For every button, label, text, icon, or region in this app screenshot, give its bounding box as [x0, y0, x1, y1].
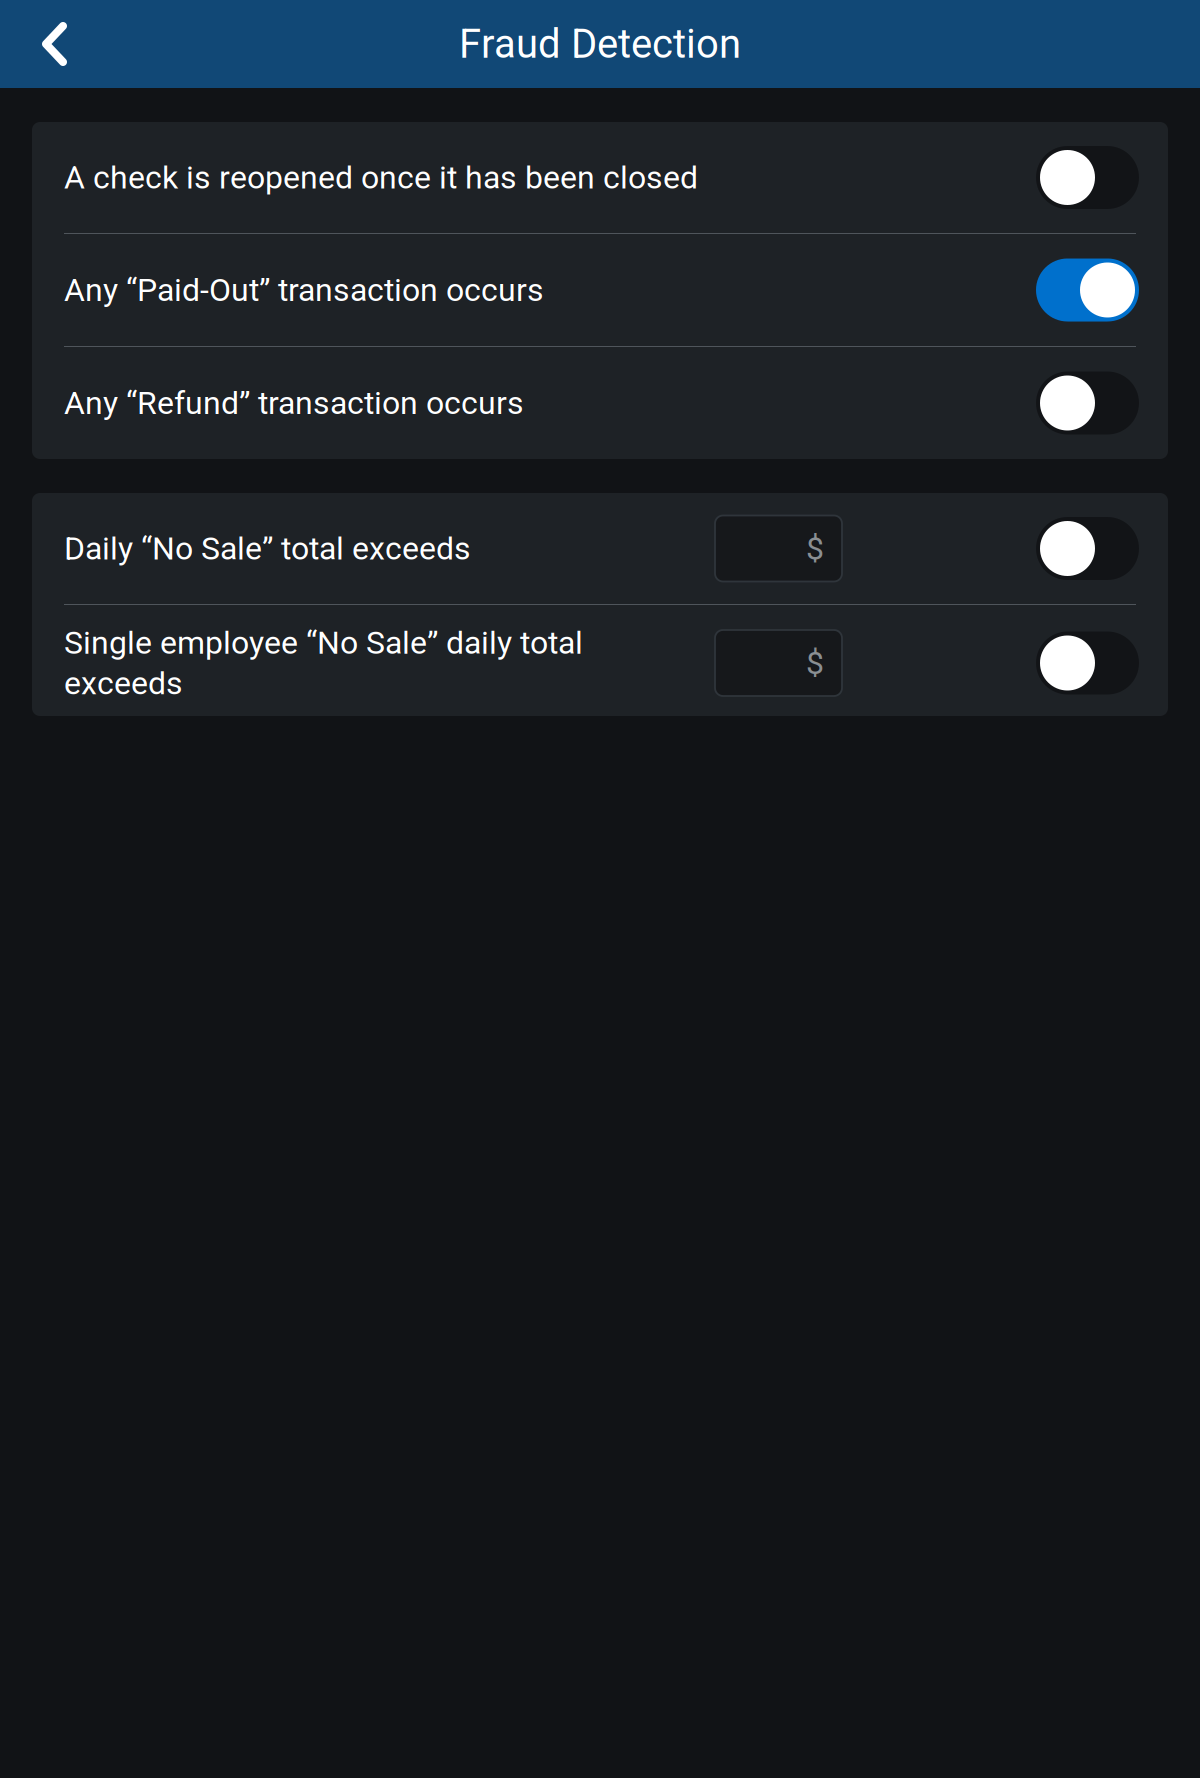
button[interactable]: Any “Refund” transaction occurs — [32, 347, 1168, 459]
button[interactable]: Dollar amount — [715, 630, 842, 696]
staticText: Daily “No Sale” total exceeds — [64, 530, 471, 567]
button[interactable]: Single employee “No Sale” daily total ex… — [32, 605, 1168, 716]
button[interactable]: A check is reopened once it has been clo… — [1036, 146, 1139, 209]
staticText: $ — [806, 644, 824, 682]
staticText: $ — [806, 530, 824, 567]
button[interactable]: Any “Paid-Out” transaction occurs — [32, 234, 1168, 346]
button[interactable]: Any “Paid-Out” transaction occurs — [1036, 258, 1139, 321]
button[interactable]: Daily “No Sale” total exceeds — [32, 493, 1168, 604]
button[interactable]: Single employee “No Sale” daily total ex… — [1036, 631, 1139, 694]
button[interactable]: A check is reopened once it has been clo… — [32, 122, 1168, 233]
staticText: Any “Refund” transaction occurs — [64, 384, 524, 422]
button[interactable]: Daily “No Sale” total exceeds — [1036, 517, 1139, 580]
button[interactable]: Dollar amount — [715, 515, 842, 581]
staticText: A check is reopened once it has been clo… — [64, 159, 698, 196]
button[interactable]: Any “Refund” transaction occurs — [1036, 371, 1139, 434]
button[interactable]: Back — [0, 0, 91, 88]
staticText: Any “Paid-Out” transaction occurs — [64, 271, 544, 309]
staticText: Fraud Detection — [459, 21, 741, 67]
staticText: Single employee “No Sale” daily total ex… — [64, 624, 583, 702]
